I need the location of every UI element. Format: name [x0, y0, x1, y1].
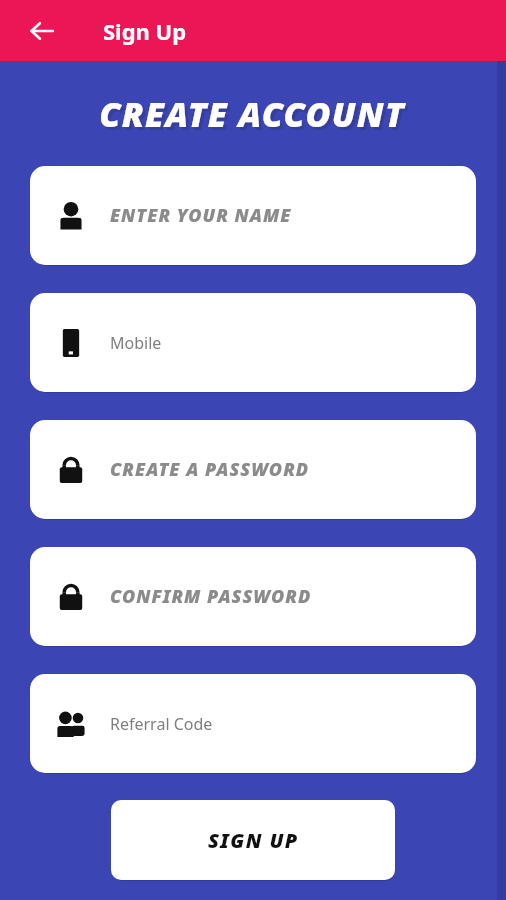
staticText: CREATE ACCOUNT	[99, 91, 405, 137]
button[interactable]: Referral Code	[30, 674, 476, 773]
button[interactable]: CONFIRM PASSWORD	[30, 547, 476, 646]
staticText: SIGN UP	[208, 827, 299, 854]
staticText: CONFIRM PASSWORD	[110, 584, 312, 609]
staticText: ENTER YOUR NAME	[110, 203, 292, 228]
button[interactable]: Back	[22, 11, 62, 51]
staticText: CREATE ACCOUNT	[102, 94, 408, 140]
staticText: Mobile	[110, 332, 162, 354]
button[interactable]: Mobile	[30, 293, 476, 392]
button[interactable]: ENTER YOUR NAME	[30, 166, 476, 265]
staticText: Sign Up	[103, 16, 187, 46]
button[interactable]: CREATE A PASSWORD	[30, 420, 476, 519]
staticText: Referral Code	[110, 713, 213, 735]
staticText: CREATE A PASSWORD	[110, 457, 310, 482]
button[interactable]: SIGN UP	[111, 800, 395, 880]
